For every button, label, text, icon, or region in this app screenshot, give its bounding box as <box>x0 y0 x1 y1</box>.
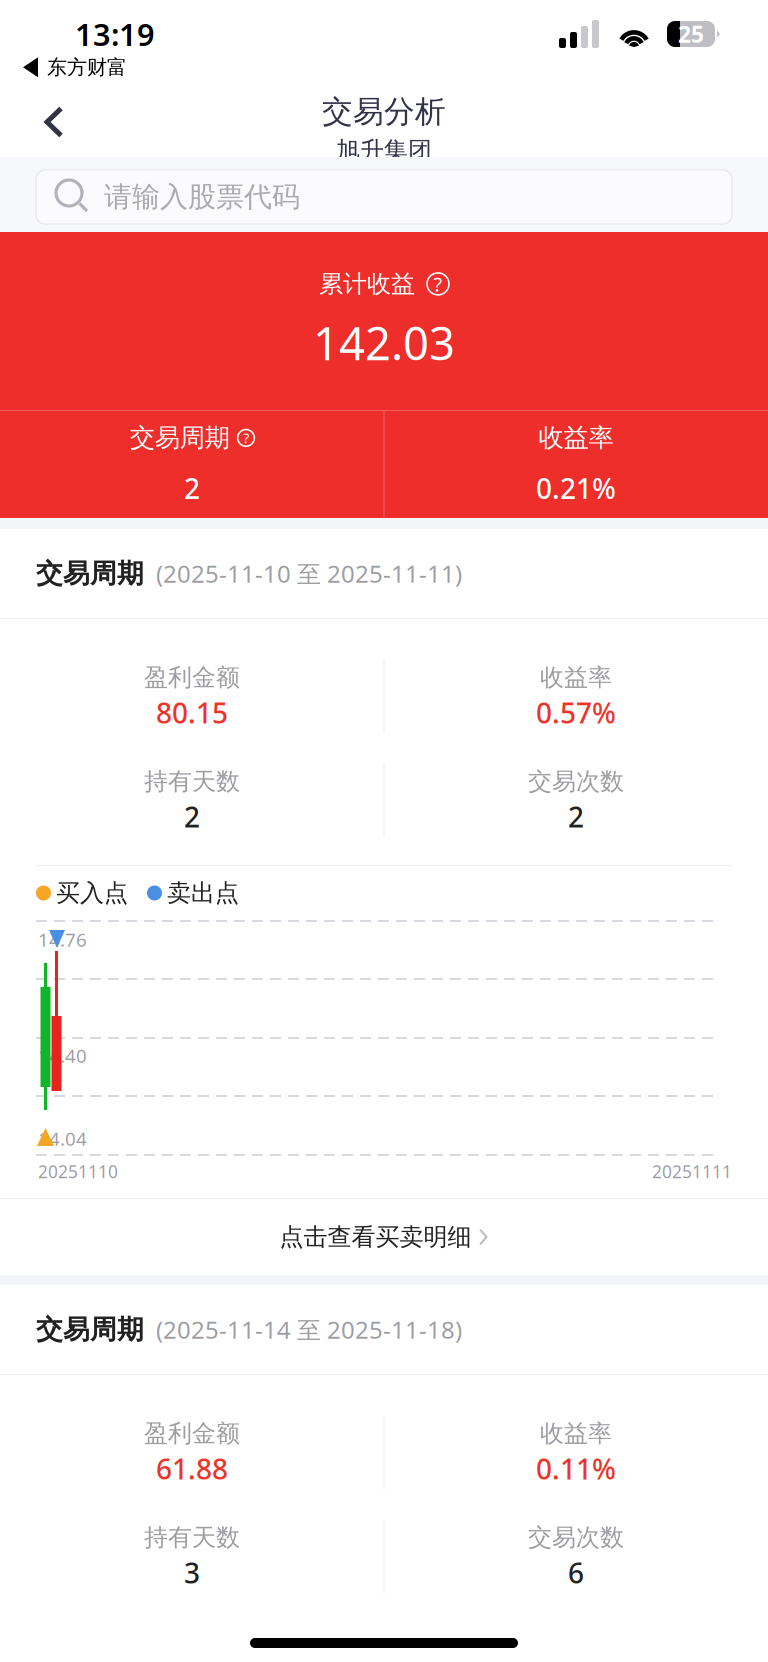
staticText: 0.21% <box>536 469 616 507</box>
staticText: 请输入股票代码 <box>104 180 300 214</box>
staticText: 卖出点 <box>167 878 239 908</box>
staticText: 6 <box>568 1554 584 1591</box>
staticText: (2025-11-10 至 2025-11-11) <box>156 558 462 589</box>
button[interactable]: 东方财富 <box>0 49 147 86</box>
staticText: 收益率 <box>540 1419 612 1448</box>
button[interactable]: 请输入股票代码 <box>0 157 768 232</box>
staticText: 东方财富 <box>47 55 127 80</box>
staticText: 交易次数 <box>528 767 624 796</box>
button[interactable]: 点击查看买卖明细 <box>0 1199 768 1275</box>
staticText: 14.76 <box>38 927 87 952</box>
staticText: 交易次数 <box>528 1523 624 1552</box>
staticText: 0.57% <box>536 694 616 731</box>
staticText: 80.15 <box>156 694 228 731</box>
staticText: (2025-11-14 至 2025-11-18) <box>156 1314 462 1345</box>
staticText: 交易分析 <box>322 93 446 131</box>
staticText: 旭升集团 <box>336 136 432 165</box>
staticText: 盈利金额 <box>144 1419 240 1448</box>
button[interactable]: Back <box>0 92 93 152</box>
staticText: 交易周期 <box>36 1313 144 1346</box>
staticText: 2 <box>184 798 200 835</box>
staticText: 20251111 <box>652 1160 732 1183</box>
staticText: 交易周期 <box>130 422 230 453</box>
staticText: 累计收益 <box>319 269 415 299</box>
staticText: 0.11% <box>536 1450 616 1487</box>
staticText: 142.03 <box>313 313 455 373</box>
staticText: 25 <box>678 19 704 49</box>
staticText: ? <box>433 271 442 297</box>
staticText: 收益率 <box>538 422 613 453</box>
staticText: 盈利金额 <box>144 663 240 692</box>
staticText: 13:19 <box>75 14 155 54</box>
staticText: 14.40 <box>38 1043 87 1068</box>
staticText: 持有天数 <box>144 767 240 796</box>
staticText: 2 <box>184 469 200 507</box>
staticText: 交易周期 <box>36 557 144 590</box>
staticText: 61.88 <box>156 1450 228 1487</box>
staticText: 收益率 <box>540 663 612 692</box>
staticText: ? <box>243 428 249 448</box>
staticText: 点击查看买卖明细 <box>279 1222 471 1252</box>
staticText: 持有天数 <box>144 1523 240 1552</box>
staticText: 3 <box>184 1554 200 1591</box>
staticText: 2 <box>568 798 584 835</box>
staticText: 14.04 <box>38 1126 87 1151</box>
staticText: 20251110 <box>38 1160 118 1183</box>
staticText: 买入点 <box>56 878 128 908</box>
